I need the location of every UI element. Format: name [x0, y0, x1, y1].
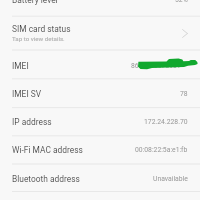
staticText: 172.24.228.70	[144, 118, 188, 126]
staticText: IMEI	[12, 61, 29, 71]
staticText: Unavailable	[153, 175, 188, 183]
staticText: SIM card status	[12, 24, 71, 34]
staticText: 78	[180, 90, 188, 98]
button[interactable]: IMEI	[0, 50, 200, 79]
staticText: IMEI SV	[12, 89, 42, 99]
button[interactable]: Wi-Fi MAC address	[0, 135, 200, 163]
button[interactable]: Bluetooth address	[0, 164, 200, 192]
staticText: 00:08:22:5a:e1:fb	[135, 146, 188, 154]
staticText: IP address	[12, 117, 52, 127]
button[interactable]: Battery level	[0, 0, 200, 16]
staticText: 52%	[175, 0, 188, 4]
staticText: Bluetooth address	[12, 174, 80, 184]
button[interactable]: SIM card status	[0, 16, 200, 50]
staticText: Wi-Fi MAC address	[12, 145, 83, 155]
staticText: Tap to view details.	[12, 35, 65, 42]
button[interactable]: IMEI SV	[0, 78, 200, 107]
button[interactable]: IP address	[0, 107, 200, 135]
other: View SIM card details	[182, 29, 188, 38]
staticText: 8612345678901	[131, 62, 181, 70]
staticText: Battery level	[12, 0, 58, 5]
